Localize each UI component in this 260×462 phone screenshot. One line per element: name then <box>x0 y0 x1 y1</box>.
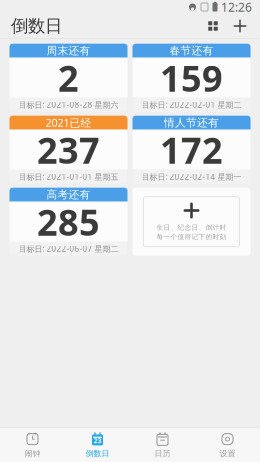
staticText: 285 <box>37 198 100 246</box>
staticText: 172 <box>160 126 223 174</box>
staticText: 周末还有 <box>46 44 90 57</box>
button[interactable]: 春节还有 <box>132 44 250 112</box>
button[interactable]: 切换视图 <box>200 14 226 38</box>
staticText: 生日、纪念日、倒计时 <box>156 223 226 232</box>
staticText: 目标日: 2022-02-01 星期二 <box>141 99 241 110</box>
staticText: 倒数日 <box>11 15 62 37</box>
button[interactable]: 2021已经 <box>9 116 127 184</box>
staticText: 目标日: 2021-08-28 星期六 <box>18 99 118 110</box>
staticText: 每一个值得记下的时刻 <box>156 233 226 241</box>
staticText: 目标日: 2021-01-01 星期五 <box>18 171 118 182</box>
button[interactable]: 周末还有 <box>9 44 127 112</box>
staticText: 设置 <box>219 449 235 458</box>
staticText: 159 <box>160 54 223 102</box>
staticText: 23 <box>93 436 101 445</box>
button[interactable]: 高考还有 <box>9 188 127 256</box>
button[interactable]: 闹钟 <box>0 429 65 461</box>
staticText: 237 <box>37 126 100 174</box>
staticText: 目标日: 2022-02-14 星期一 <box>141 171 241 182</box>
staticText: 春节还有 <box>169 44 213 57</box>
button[interactable]: 情人节还有 <box>132 116 250 184</box>
button[interactable]: 设置 <box>195 429 260 461</box>
staticText: 目标日: 2022-06-07 星期二 <box>18 243 118 254</box>
staticText: 高考还有 <box>46 188 90 201</box>
staticText: 2021已经 <box>45 116 91 130</box>
button[interactable]: 23 <box>65 429 130 461</box>
staticText: 闹钟 <box>24 449 40 458</box>
button[interactable]: 添加新的倒数日 <box>132 188 250 256</box>
staticText: 日历 <box>154 449 170 458</box>
staticText: 倒数日 <box>85 449 109 458</box>
button[interactable]: 添加倒数日 <box>226 14 254 38</box>
staticText: 情人节还有 <box>164 116 219 129</box>
staticText: 2 <box>58 54 79 102</box>
staticText: 12:26 <box>221 0 252 15</box>
button[interactable]: 日历 <box>130 429 195 461</box>
